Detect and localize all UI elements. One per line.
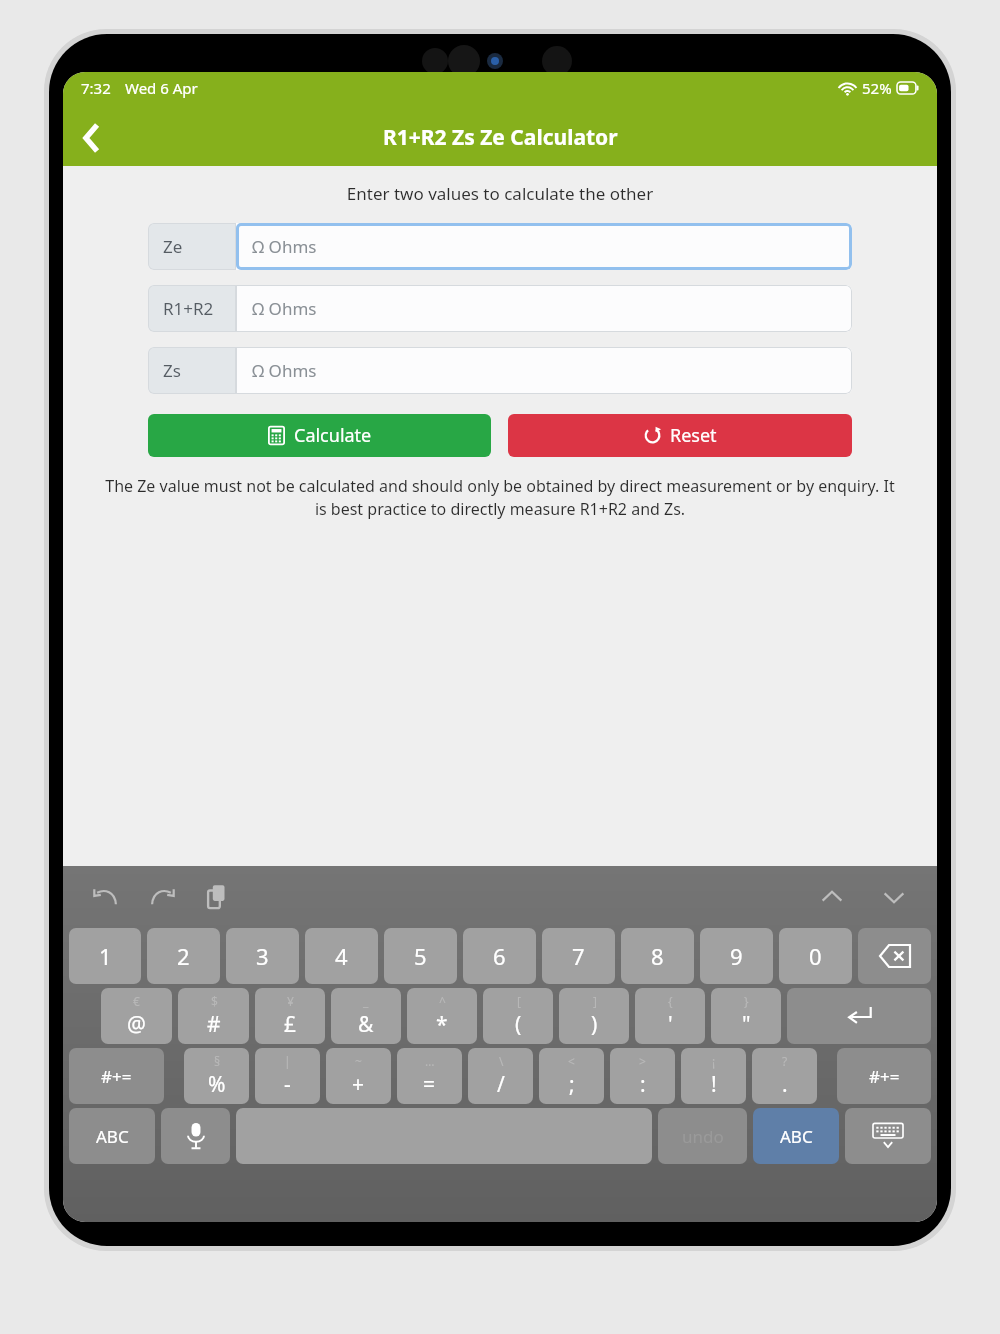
- staticText: ABC: [96, 1125, 129, 1148]
- button[interactable]: Redo: [145, 880, 179, 914]
- button[interactable]: ?: [752, 1048, 817, 1104]
- button[interactable]: ABC: [69, 1108, 155, 1164]
- button[interactable]: …: [397, 1048, 462, 1104]
- staticText: [: [517, 993, 521, 1009]
- button[interactable]: [: [483, 988, 553, 1044]
- staticText: {: [668, 993, 673, 1009]
- button[interactable]: ]: [559, 988, 629, 1044]
- button[interactable]: \: [468, 1048, 533, 1104]
- staticText: \: [499, 1053, 504, 1069]
- button[interactable]: #+=: [837, 1048, 931, 1104]
- button[interactable]: 1: [69, 928, 141, 984]
- staticText: ': [668, 1010, 673, 1039]
- staticText: *: [436, 1010, 448, 1039]
- button[interactable]: 7: [542, 928, 615, 984]
- staticText: .: [782, 1070, 788, 1099]
- staticText: 1: [99, 941, 112, 971]
- staticText: Wed 6 Apr: [125, 78, 198, 98]
- staticText: £: [284, 1010, 297, 1039]
- staticText: }: [744, 993, 749, 1009]
- button[interactable]: Undo: [89, 880, 123, 914]
- staticText: _: [363, 993, 369, 1009]
- staticText: 6: [493, 941, 506, 971]
- staticText: <: [568, 1053, 575, 1069]
- button[interactable]: {: [635, 988, 705, 1044]
- staticText: #+=: [869, 1065, 900, 1088]
- staticText: 0: [809, 941, 822, 971]
- button[interactable]: _: [331, 988, 401, 1044]
- button[interactable]: ~: [326, 1048, 391, 1104]
- button[interactable]: Calculate: [148, 414, 491, 457]
- staticText: 3: [256, 941, 269, 971]
- staticText: Ω Ohms: [252, 297, 317, 320]
- staticText: +: [352, 1070, 365, 1099]
- staticText: …: [425, 1053, 435, 1069]
- button[interactable]: ^: [407, 988, 477, 1044]
- button[interactable]: Hide keyboard: [845, 1108, 931, 1164]
- button[interactable]: 3: [226, 928, 299, 984]
- staticText: >: [639, 1053, 646, 1069]
- staticText: ¥: [287, 993, 294, 1009]
- button[interactable]: Previous field: [815, 880, 849, 914]
- button[interactable]: Back: [63, 110, 119, 166]
- button[interactable]: Paste: [201, 880, 235, 914]
- button[interactable]: 0: [779, 928, 852, 984]
- staticText: ]: [593, 993, 597, 1009]
- staticText: &: [358, 1010, 374, 1039]
- staticText: Enter two values to calculate the other: [63, 182, 937, 205]
- staticText: #: [207, 1010, 221, 1039]
- button[interactable]: 8: [621, 928, 694, 984]
- button[interactable]: Reset: [508, 414, 852, 457]
- staticText: 52%: [862, 78, 892, 98]
- button[interactable]: >: [610, 1048, 675, 1104]
- staticText: Reset: [670, 423, 717, 448]
- button[interactable]: €: [101, 988, 172, 1044]
- staticText: ¡: [712, 1053, 716, 1069]
- button[interactable]: R1+R2: [148, 285, 852, 332]
- staticText: @: [127, 1010, 146, 1039]
- staticText: Calculate: [294, 423, 372, 448]
- button[interactable]: 5: [384, 928, 457, 984]
- button[interactable]: §: [184, 1048, 249, 1104]
- button[interactable]: ABC: [753, 1108, 839, 1164]
- staticText: =: [423, 1070, 436, 1099]
- button[interactable]: ¥: [255, 988, 325, 1044]
- staticText: §: [214, 1053, 221, 1069]
- button[interactable]: undo: [658, 1108, 747, 1164]
- staticText: $: [211, 993, 218, 1009]
- staticText: |: [284, 1053, 291, 1069]
- button[interactable]: 2: [147, 928, 220, 984]
- button[interactable]: #+=: [69, 1048, 164, 1104]
- staticText: 7:32: [81, 78, 111, 98]
- staticText: /: [497, 1070, 505, 1099]
- button[interactable]: ¡: [681, 1048, 746, 1104]
- staticText: ?: [782, 1053, 788, 1069]
- button[interactable]: Ze: [148, 223, 852, 270]
- button[interactable]: Dictate: [161, 1108, 230, 1164]
- button[interactable]: |: [255, 1048, 320, 1104]
- button[interactable]: 4: [305, 928, 378, 984]
- button[interactable]: Next field: [877, 880, 911, 914]
- staticText: ": [742, 1010, 751, 1039]
- button[interactable]: 6: [463, 928, 536, 984]
- button[interactable]: 9: [700, 928, 773, 984]
- button[interactable]: <: [539, 1048, 604, 1104]
- button[interactable]: Backspace: [858, 928, 931, 984]
- staticText: Ω Ohms: [252, 359, 317, 382]
- staticText: ABC: [780, 1125, 813, 1148]
- staticText: #+=: [101, 1065, 132, 1088]
- button[interactable]: Return: [787, 988, 931, 1044]
- staticText: 5: [414, 941, 427, 971]
- staticText: ~: [355, 1053, 362, 1069]
- staticText: €: [133, 993, 140, 1009]
- button[interactable]: $: [178, 988, 249, 1044]
- staticText: 4: [335, 941, 348, 971]
- staticText: The Ze value must not be calculated and …: [103, 475, 897, 520]
- staticText: ^: [439, 993, 446, 1009]
- staticText: Zs: [163, 359, 181, 382]
- button[interactable]: }: [711, 988, 781, 1044]
- button[interactable]: Zs: [148, 347, 852, 394]
- staticText: !: [711, 1070, 717, 1099]
- staticText: ;: [569, 1070, 575, 1099]
